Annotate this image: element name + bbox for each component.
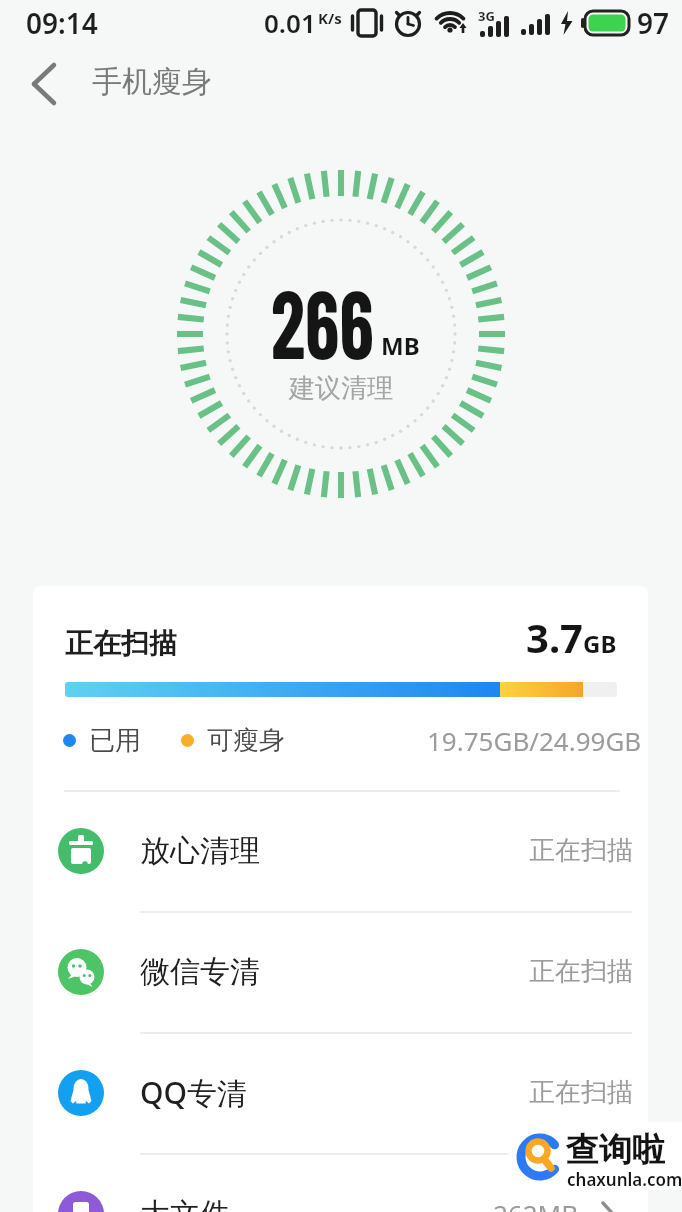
staticText: 09:14 <box>26 4 98 42</box>
staticText: 正在扫描 <box>529 1076 633 1109</box>
button[interactable]: QQ专清 <box>33 1032 648 1153</box>
staticText: GB <box>583 627 617 660</box>
staticText: 已用 <box>89 724 141 757</box>
staticText: 19.75GB/24.99GB <box>427 723 642 758</box>
staticText: 可瘦身 <box>207 724 285 757</box>
staticText: 微信专清 <box>140 953 260 991</box>
staticText: 0.01 <box>264 5 316 40</box>
staticText: 查询啦 <box>566 1129 665 1171</box>
staticText: 正在扫描 <box>65 626 177 661</box>
button[interactable]: 微信专清 <box>33 911 648 1032</box>
staticText: MB <box>381 329 420 362</box>
staticText: 手机瘦身 <box>92 63 212 101</box>
staticText: 97 <box>637 4 670 42</box>
button[interactable]: 放心清理 <box>33 790 648 911</box>
staticText: 3.7 <box>526 610 583 664</box>
staticText: 262MB <box>493 1196 579 1212</box>
staticText: 3G <box>478 7 495 25</box>
button[interactable]: 大文件 <box>33 1153 648 1212</box>
button[interactable] <box>16 52 72 118</box>
staticText: QQ专清 <box>140 1072 248 1113</box>
staticText: K/s <box>318 8 342 28</box>
staticText: 正在扫描 <box>529 955 633 988</box>
staticText: chaxunla.com <box>567 1168 682 1190</box>
staticText: 放心清理 <box>140 832 260 870</box>
staticText: 266 <box>271 264 374 364</box>
staticText: 大文件 <box>140 1195 230 1212</box>
staticText: 建议清理 <box>289 372 393 405</box>
staticText: 正在扫描 <box>529 834 633 867</box>
